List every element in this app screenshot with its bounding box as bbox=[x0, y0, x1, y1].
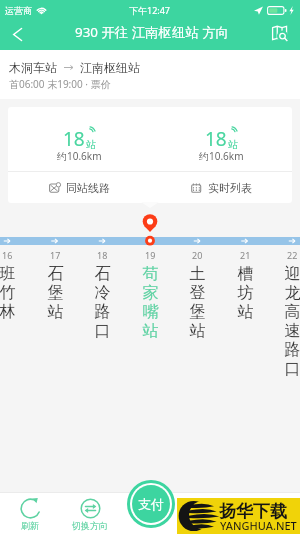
staticText: 22 bbox=[287, 249, 298, 261]
staticText: 实时列表 bbox=[208, 181, 252, 195]
staticText: 槽坊站 bbox=[237, 264, 254, 322]
staticText: 18 bbox=[205, 126, 227, 152]
button[interactable]: Map search bbox=[264, 19, 294, 47]
staticText: 21 bbox=[240, 249, 251, 261]
staticText: 18 bbox=[63, 126, 85, 152]
button[interactable]: 22 bbox=[277, 249, 300, 379]
button[interactable]: 实时列表 bbox=[150, 172, 292, 203]
staticText: 约10.6km bbox=[199, 149, 244, 163]
staticText: 首06:00 末19:00 · 票价 bbox=[9, 77, 111, 91]
staticText: 19 bbox=[145, 249, 156, 261]
staticText: 苟家嘴站 bbox=[142, 264, 159, 341]
button[interactable]: 刷新 bbox=[0, 493, 60, 534]
button[interactable]: Back bbox=[2, 21, 32, 47]
staticText: 站 bbox=[86, 138, 96, 151]
button[interactable]: 支付 bbox=[132, 485, 170, 523]
staticText: 支付 bbox=[138, 496, 164, 512]
button[interactable]: 切换方向 bbox=[60, 493, 120, 534]
button[interactable]: 19 bbox=[135, 249, 165, 341]
button[interactable]: 18 bbox=[8, 107, 150, 171]
button[interactable]: 18 bbox=[87, 249, 117, 341]
staticText: 站 bbox=[228, 138, 238, 151]
staticText: 17 bbox=[50, 249, 61, 261]
staticText: 扬华下载 bbox=[219, 501, 287, 522]
staticText: 同站线路 bbox=[66, 181, 110, 195]
button[interactable]: 20 bbox=[182, 249, 212, 341]
staticText: 江南枢纽站 bbox=[80, 60, 140, 75]
staticText: 930 开往 江南枢纽站 方向 bbox=[75, 23, 229, 41]
staticText: 班竹林 bbox=[0, 264, 16, 322]
staticText: 切换方向 bbox=[72, 520, 108, 531]
staticText: 16 bbox=[2, 249, 13, 261]
button[interactable]: 16 bbox=[0, 249, 22, 322]
button[interactable]: 21 bbox=[230, 249, 260, 322]
staticText: 20 bbox=[192, 249, 203, 261]
staticText: 约10.6km bbox=[57, 149, 102, 163]
staticText: 土登堡站 bbox=[189, 264, 206, 341]
staticText: 石堡站 bbox=[47, 264, 64, 322]
staticText: 刷新 bbox=[21, 520, 39, 531]
button[interactable]: 18 bbox=[150, 107, 292, 171]
staticText: YANGHUA.NET bbox=[220, 518, 297, 533]
staticText: 石冷路口 bbox=[94, 264, 111, 341]
staticText: 18 bbox=[97, 249, 108, 261]
staticText: 下午12:47 bbox=[129, 4, 171, 16]
staticText: 运营商 bbox=[5, 5, 32, 16]
button[interactable]: 17 bbox=[40, 249, 70, 322]
staticText: 木洞车站 bbox=[9, 60, 57, 75]
button[interactable]: 同站线路 bbox=[8, 172, 150, 203]
staticText: 迎龙高速路口 bbox=[284, 264, 300, 379]
